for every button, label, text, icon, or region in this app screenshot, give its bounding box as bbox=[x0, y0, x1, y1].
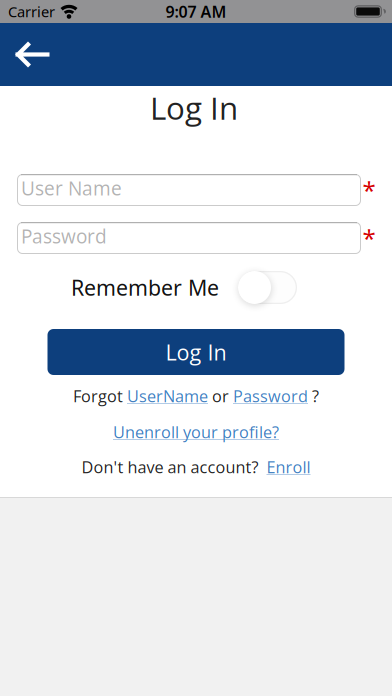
staticText: Enroll bbox=[266, 456, 310, 478]
button[interactable]: Remember Me bbox=[238, 271, 297, 304]
button[interactable]: Log In bbox=[47, 329, 344, 375]
staticText: Password bbox=[233, 385, 308, 407]
staticText: Log In bbox=[165, 337, 226, 367]
button[interactable]: Unenroll your profile? bbox=[113, 423, 279, 441]
staticText: Don't have an account? bbox=[81, 456, 266, 478]
staticText: Log In bbox=[150, 86, 238, 129]
staticText: User Name bbox=[21, 175, 122, 201]
staticText: Remember Me bbox=[71, 273, 219, 302]
staticText: Forgot bbox=[73, 385, 127, 407]
staticText: Unenroll your profile? bbox=[113, 421, 279, 443]
staticText: or bbox=[208, 385, 233, 407]
staticText: Password bbox=[21, 223, 107, 249]
staticText: ? bbox=[308, 385, 319, 407]
button[interactable]: Forgot bbox=[73, 387, 319, 405]
staticText: Carrier bbox=[8, 2, 55, 21]
button[interactable]: Don't have an account? bbox=[81, 458, 310, 476]
staticText: * bbox=[362, 222, 375, 254]
staticText: 9:07 AM bbox=[165, 1, 226, 22]
staticText: * bbox=[362, 174, 375, 206]
staticText: UserName bbox=[127, 385, 208, 407]
button[interactable]: Back bbox=[0, 26, 62, 82]
